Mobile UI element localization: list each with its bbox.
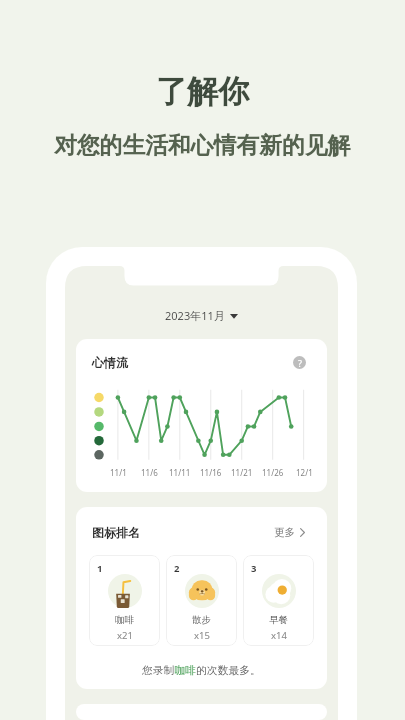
staticText: 11/26 [262, 467, 284, 478]
staticText: 了解你 [156, 72, 249, 111]
button[interactable]: 2023年11月 [65, 308, 338, 323]
button[interactable]: 帮助 [293, 356, 306, 369]
staticText: 11/11 [169, 467, 191, 478]
staticText: 12/1 [296, 467, 313, 478]
staticText: 心情流 [92, 355, 128, 370]
staticText: 11/1 [110, 467, 127, 478]
staticText: 咖啡 [115, 614, 134, 626]
staticText: 您录制咖啡的次数最多。 [142, 664, 261, 678]
staticText: 2023年11月 [165, 308, 225, 323]
button[interactable]: 2 [166, 555, 237, 646]
staticText: 11/6 [141, 467, 158, 478]
button[interactable]: 1 [89, 555, 160, 646]
staticText: 11/16 [200, 467, 222, 478]
staticText: 对您的生活和心情有新的见解 [54, 131, 351, 160]
staticText: x14 [271, 629, 287, 642]
staticText: 早餐 [269, 614, 288, 626]
staticText: x21 [117, 629, 133, 642]
button[interactable]: 更多 [274, 526, 305, 539]
staticText: 11/21 [231, 467, 253, 478]
staticText: ? [298, 357, 302, 369]
staticText: 3 [251, 562, 257, 575]
staticText: 图标排名 [92, 525, 140, 540]
staticText: x15 [194, 629, 210, 642]
button[interactable]: 3 [243, 555, 314, 646]
staticText: 更多 [274, 526, 295, 539]
staticText: 散步 [192, 614, 211, 626]
staticText: 2 [174, 562, 180, 575]
staticText: 1 [97, 562, 103, 575]
